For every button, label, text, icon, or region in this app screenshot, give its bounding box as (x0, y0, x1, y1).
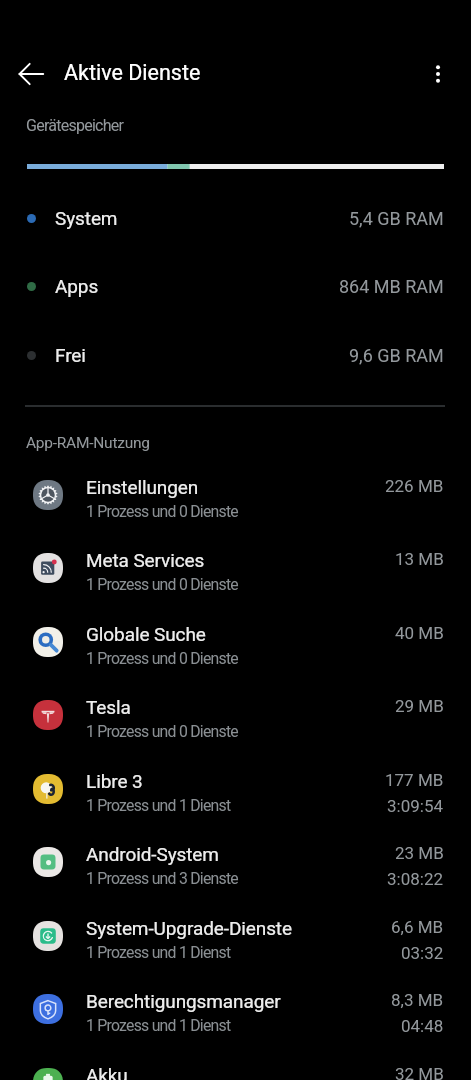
staticText: 1 Prozess und 0 Dienste (86, 575, 238, 594)
staticText: Tesla (86, 696, 131, 718)
staticText: 32 MB (395, 1064, 444, 1080)
button[interactable]: Android-System (0, 825, 471, 899)
staticText: 177 MB (385, 770, 444, 790)
button[interactable]: System-Upgrade-Dienste (0, 899, 471, 973)
staticText: System-Upgrade-Dienste (86, 917, 292, 939)
staticText: 6,6 MB (391, 917, 444, 937)
staticText: Berechtigungsmanager (86, 990, 281, 1012)
staticText: App-RAM-Nutzung (26, 434, 150, 452)
staticText: 1 Prozess und 0 Dienste (86, 649, 238, 668)
staticText: Globale Suche (86, 623, 206, 645)
button[interactable]: More options (416, 52, 460, 96)
staticText: 1 Prozess und 1 Dienst (86, 1016, 231, 1035)
staticText: 5,4 GB RAM (349, 208, 444, 229)
staticText: 1 Prozess und 3 Dienste (86, 869, 238, 888)
staticText: 226 MB (385, 476, 444, 496)
button[interactable]: Back (7, 50, 55, 98)
staticText: 29 MB (395, 696, 444, 716)
staticText: Frei (55, 344, 86, 366)
staticText: 864 MB RAM (339, 276, 444, 297)
staticText: 1 Prozess und 1 Dienst (86, 943, 231, 962)
staticText: 03:32 (401, 943, 444, 963)
staticText: Gerätespeicher (26, 116, 124, 135)
staticText: System (55, 207, 118, 229)
staticText: Einstellungen (86, 476, 199, 498)
button[interactable]: Apps (0, 252, 471, 320)
button[interactable]: Akku (0, 1046, 471, 1080)
staticText: 9,6 GB RAM (349, 345, 444, 366)
button[interactable]: Libre 3 (0, 752, 471, 826)
staticText: 23 MB (395, 843, 444, 863)
staticText: 8,3 MB (391, 990, 444, 1010)
staticText: Aktive Dienste (64, 60, 201, 85)
button[interactable]: Tesla (0, 678, 471, 752)
button[interactable]: Globale Suche (0, 605, 471, 679)
staticText: Akku (86, 1064, 128, 1080)
staticText: 13 MB (395, 549, 444, 569)
staticText: 3:09:54 (387, 796, 444, 816)
button[interactable]: Meta Services (0, 531, 471, 605)
staticText: Meta Services (86, 549, 205, 571)
staticText: 04:48 (401, 1016, 444, 1036)
staticText: 1 Prozess und 1 Dienst (86, 796, 231, 815)
staticText: 1 Prozess und 0 Dienste (86, 722, 238, 741)
button[interactable]: Einstellungen (0, 458, 471, 532)
staticText: 40 MB (395, 623, 444, 643)
button[interactable]: Berechtigungsmanager (0, 972, 471, 1046)
staticText: 3:08:22 (387, 869, 444, 889)
staticText: Android-System (86, 843, 219, 865)
staticText: Apps (55, 275, 99, 297)
staticText: Libre 3 (86, 770, 143, 792)
staticText: 1 Prozess und 0 Dienste (86, 502, 238, 521)
button[interactable]: Frei (0, 321, 471, 389)
button[interactable]: System (0, 184, 471, 252)
